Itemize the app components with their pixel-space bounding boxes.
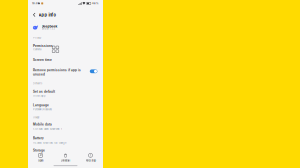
button[interactable] bbox=[28, 147, 103, 154]
button[interactable]: Force stop bbox=[78, 152, 103, 164]
staticText: unused bbox=[33, 73, 45, 76]
button[interactable]: Back bbox=[30, 10, 38, 19]
button[interactable] bbox=[28, 120, 103, 132]
staticText: Defaults bbox=[33, 82, 42, 85]
button[interactable] bbox=[28, 65, 103, 79]
staticText: In this app bbox=[33, 94, 46, 97]
staticText: Uninstall bbox=[60, 159, 70, 162]
staticText: Battery bbox=[33, 136, 44, 140]
staticText: Usage bbox=[33, 116, 39, 119]
button[interactable]: Open bbox=[28, 152, 53, 164]
button[interactable] bbox=[28, 41, 103, 53]
staticText: 10:01 bbox=[32, 2, 39, 5]
staticText: Remove permissions if app is bbox=[33, 68, 81, 72]
staticText: Version 1.3.2 bbox=[42, 28, 55, 30]
button[interactable]: Remove permissions if app is unused bbox=[90, 69, 97, 73]
staticText: Storage bbox=[33, 149, 45, 152]
staticText: Set as default bbox=[33, 90, 55, 93]
staticText: Force stop bbox=[85, 159, 95, 162]
button[interactable] bbox=[28, 133, 103, 145]
staticText: 1% used since last full charge bbox=[33, 141, 66, 144]
staticText: App info bbox=[39, 13, 56, 17]
staticText: Permissions bbox=[33, 44, 53, 48]
staticText: DeepSeek bbox=[42, 24, 58, 28]
staticText: Mobile data bbox=[33, 123, 52, 126]
button[interactable] bbox=[28, 54, 103, 64]
staticText: Open bbox=[38, 159, 43, 162]
staticText: Camera bbox=[33, 48, 41, 51]
button[interactable]: Uninstall bbox=[53, 152, 78, 164]
button[interactable] bbox=[28, 100, 103, 113]
staticText: 1.41 MB used since Feb 1 bbox=[33, 128, 62, 131]
button[interactable] bbox=[28, 86, 103, 99]
staticText: 46% bbox=[92, 2, 99, 5]
staticText: Privacy bbox=[33, 36, 41, 39]
staticText: Language bbox=[33, 103, 49, 107]
staticText: Screen time bbox=[33, 58, 52, 62]
staticText: Русский (Russian) bbox=[33, 108, 52, 111]
